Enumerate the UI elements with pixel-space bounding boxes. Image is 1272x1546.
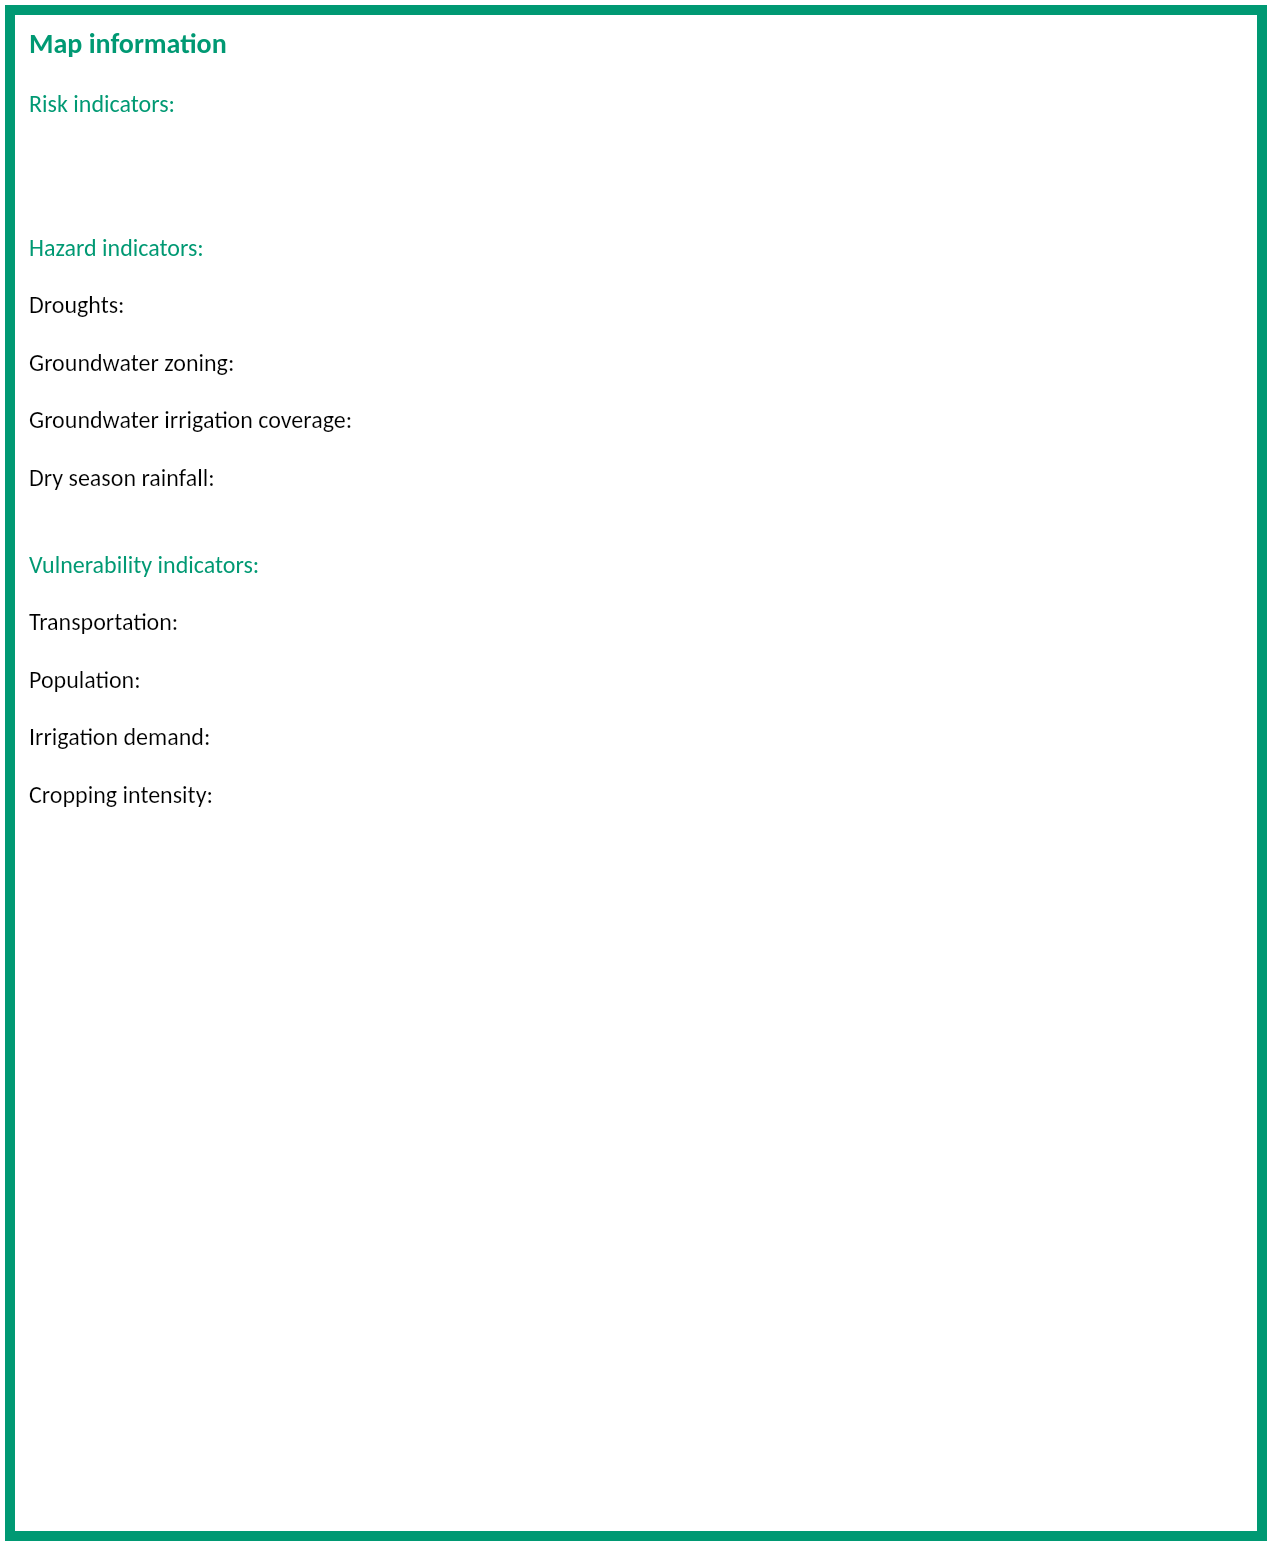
button[interactable]: Population: bbox=[15, 657, 1272, 702]
button[interactable]: Vulnerability indicators: bbox=[15, 542, 1272, 587]
button[interactable]: Hazard indicators: bbox=[15, 225, 1272, 270]
staticText: Groundwater zoning: bbox=[29, 348, 235, 377]
button[interactable]: Groundwater zoning: bbox=[15, 340, 1272, 385]
button[interactable]: Groundwater irrigation coverage: bbox=[15, 397, 1272, 442]
button[interactable]: Droughts: bbox=[15, 282, 1272, 327]
button[interactable]: Irrigation demand: bbox=[15, 714, 1272, 759]
button[interactable]: Risk indicators: bbox=[15, 81, 1272, 126]
button[interactable]: Transportation: bbox=[15, 599, 1272, 644]
staticText: Transportation: bbox=[29, 607, 179, 636]
staticText: Cropping intensity: bbox=[29, 780, 213, 809]
button[interactable]: Cropping intensity: bbox=[15, 772, 1272, 817]
button[interactable]: Map information bbox=[15, 18, 1272, 68]
staticText: Vulnerability indicators: bbox=[29, 550, 260, 579]
staticText: Irrigation demand: bbox=[29, 722, 211, 751]
staticText: Dry season rainfall: bbox=[29, 463, 215, 492]
staticText: Droughts: bbox=[29, 290, 125, 319]
staticText: Map information bbox=[29, 26, 227, 60]
staticText: Population: bbox=[29, 665, 141, 694]
staticText: Hazard indicators: bbox=[29, 233, 204, 262]
staticText: Risk indicators: bbox=[29, 89, 175, 118]
staticText: Groundwater irrigation coverage: bbox=[29, 405, 353, 434]
button[interactable]: Dry season rainfall: bbox=[15, 455, 1272, 500]
